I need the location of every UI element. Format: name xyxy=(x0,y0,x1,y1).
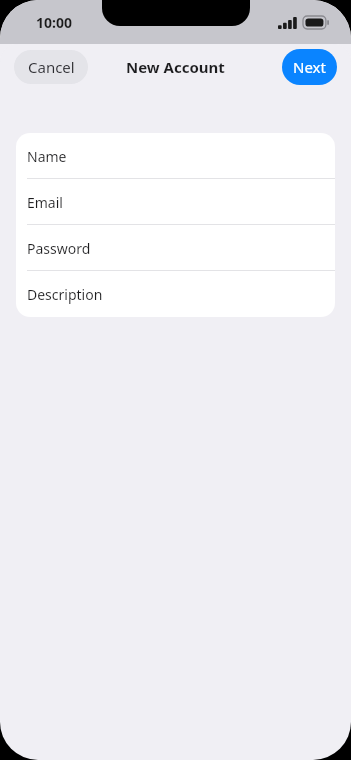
staticText: Next xyxy=(293,57,326,77)
staticText: Email xyxy=(27,193,63,212)
button[interactable]: Email xyxy=(16,179,335,225)
button[interactable]: Name xyxy=(16,133,335,179)
staticText: Name xyxy=(27,147,67,166)
button[interactable]: Password xyxy=(16,225,335,271)
staticText: 10:00 xyxy=(36,13,72,32)
staticText: Description xyxy=(27,285,103,304)
staticText: Cancel xyxy=(28,57,75,77)
staticText: New Account xyxy=(126,57,225,77)
staticText: Password xyxy=(27,239,91,258)
button[interactable]: Description xyxy=(16,271,335,317)
button[interactable]: Cancel xyxy=(14,50,88,84)
button[interactable]: Next xyxy=(282,49,337,85)
